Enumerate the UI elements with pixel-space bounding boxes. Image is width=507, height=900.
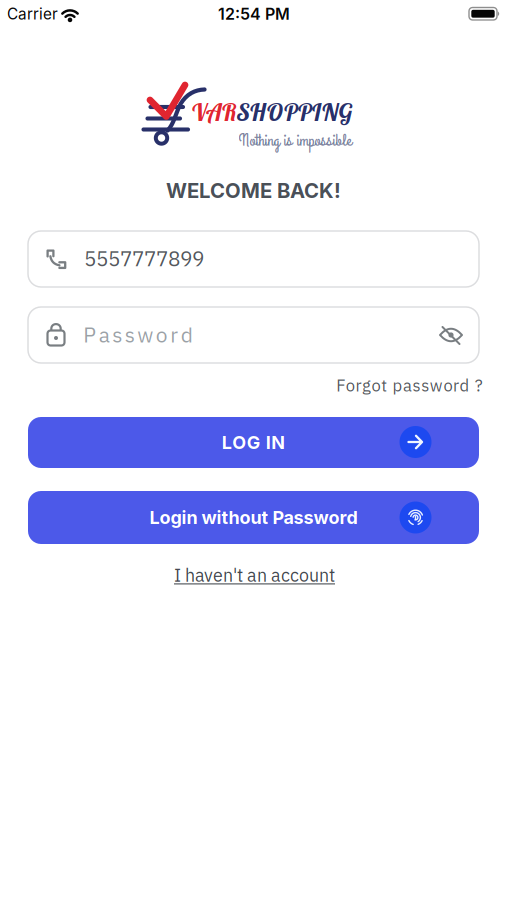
staticText: Password [83,321,193,348]
staticText: WELCOME BACK! [166,178,341,203]
button[interactable]: 5557777899 [28,231,479,287]
button[interactable]: Login without Password [28,491,479,544]
button[interactable]: LOG IN [28,417,479,468]
staticText: SHOPPING [237,97,352,127]
staticText: Login without Password [149,507,357,528]
staticText: 5557777899 [84,245,204,272]
button[interactable]: Forgot password ? [329,374,489,396]
staticText: LOG IN [222,432,285,453]
staticText: 12:54 PM [218,4,290,24]
button[interactable]: Password [28,307,479,363]
button[interactable]: Show password [429,313,473,357]
button[interactable]: I haven't an account [174,563,335,586]
staticText: I haven't an account [174,563,335,586]
staticText: Nothing is impossible [238,129,351,153]
staticText: Carrier [7,5,58,23]
staticText: VAR [191,97,237,127]
staticText: Forgot password ? [336,374,483,396]
